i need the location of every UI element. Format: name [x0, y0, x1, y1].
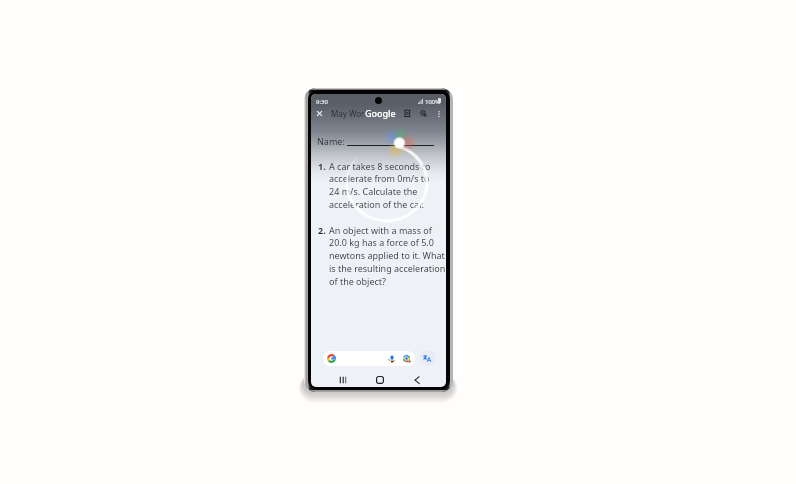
button[interactable]	[323, 351, 415, 366]
button[interactable]: Close	[314, 108, 325, 119]
button[interactable]: Translate	[419, 350, 435, 366]
staticText: 100%	[425, 98, 441, 106]
staticText: 9:30	[316, 98, 328, 106]
button[interactable]: Home	[372, 374, 388, 386]
button[interactable]: Open in app	[401, 107, 413, 119]
staticText: 1.	[318, 160, 329, 172]
staticText: An object with a mass of 20.0 kg has a f…	[329, 224, 446, 288]
staticText: 2.	[318, 224, 329, 236]
button[interactable]: Recent apps	[335, 374, 351, 386]
button[interactable]: Google Lens	[417, 107, 429, 119]
button[interactable]: More options	[433, 108, 444, 119]
button[interactable]: Back	[410, 374, 426, 386]
staticText: Google	[365, 107, 396, 119]
staticText: Name:	[317, 135, 345, 147]
staticText: May Work	[331, 108, 369, 119]
staticText: A car takes 8 seconds to accelerate from…	[329, 160, 446, 211]
